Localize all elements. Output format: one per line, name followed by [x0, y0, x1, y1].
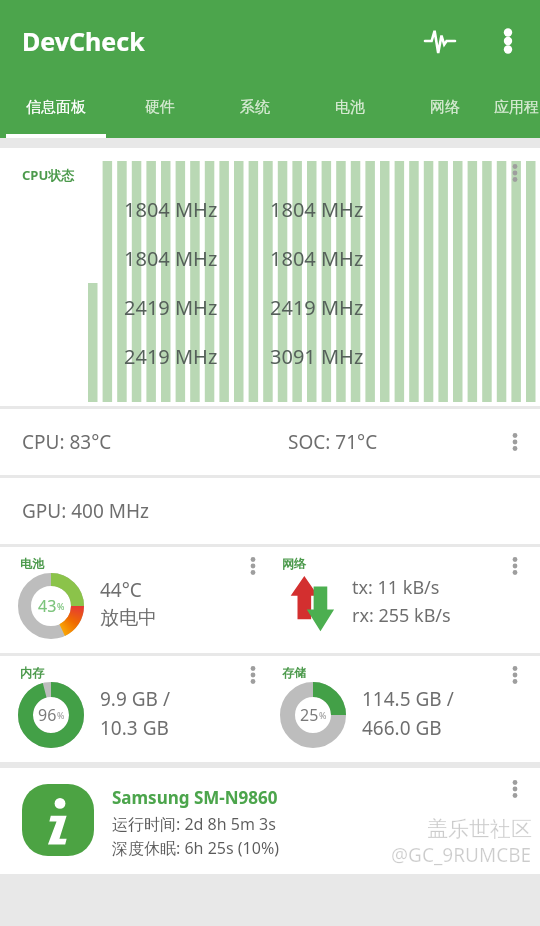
- staticText: 深度休眠: 6h 25s (10%): [112, 837, 279, 859]
- button[interactable]: Monitor: [418, 19, 462, 63]
- button[interactable]: More options: [498, 425, 532, 459]
- staticText: 系统: [240, 98, 270, 117]
- button[interactable]: More options: [498, 658, 532, 692]
- button[interactable]: 网络: [397, 82, 492, 132]
- staticText: DevCheck: [22, 24, 145, 58]
- staticText: rx: 255 kB/s: [352, 603, 451, 628]
- staticText: tx: 11 kB/s: [352, 575, 440, 600]
- button[interactable]: More options: [236, 549, 270, 583]
- staticText: 1804 MHz: [124, 196, 218, 223]
- staticText: SOC: 71°C: [288, 429, 378, 455]
- staticText: 2419 MHz: [124, 294, 218, 321]
- staticText: %: [57, 709, 65, 721]
- staticText: 硬件: [145, 98, 175, 117]
- staticText: 盖乐世社区: [427, 816, 532, 842]
- button[interactable]: More options: [498, 156, 532, 190]
- staticText: 放电中: [100, 606, 157, 630]
- staticText: 信息面板: [26, 98, 86, 117]
- staticText: 2419 MHz: [124, 343, 218, 370]
- staticText: GPU: 400 MHz: [22, 498, 150, 524]
- staticText: 网络: [282, 556, 306, 571]
- staticText: %: [319, 709, 327, 721]
- button[interactable]: More options: [236, 658, 270, 692]
- staticText: 2419 MHz: [270, 294, 364, 321]
- button[interactable]: 网络: [270, 547, 540, 653]
- button[interactable]: More options: [498, 549, 532, 583]
- staticText: CPU: 83°C: [22, 429, 112, 455]
- staticText: 10.3 GB: [100, 715, 169, 741]
- staticText: 3091 MHz: [270, 343, 364, 370]
- staticText: 电池: [335, 98, 365, 117]
- staticText: 应用程: [494, 98, 539, 117]
- button[interactable]: 内存: [0, 656, 270, 762]
- staticText: 114.5 GB /: [362, 686, 454, 712]
- staticText: 1804 MHz: [270, 245, 364, 272]
- staticText: 网络: [430, 98, 460, 117]
- staticText: @GC_9RUMCBE: [391, 842, 532, 868]
- staticText: 1804 MHz: [270, 196, 364, 223]
- button[interactable]: 信息面板: [0, 82, 112, 132]
- button[interactable]: 电池: [302, 82, 397, 132]
- button[interactable]: Samsung SM-N9860: [0, 768, 540, 874]
- staticText: 466.0 GB: [362, 715, 442, 741]
- staticText: 96: [38, 704, 57, 726]
- button[interactable]: CPU状态: [0, 148, 540, 406]
- button[interactable]: 应用程: [492, 82, 540, 132]
- staticText: 运行时间: 2d 8h 5m 3s: [112, 813, 276, 835]
- staticText: 9.9 GB /: [100, 686, 170, 712]
- staticText: 存储: [282, 665, 306, 680]
- staticText: %: [57, 600, 65, 612]
- staticText: 电池: [20, 556, 44, 571]
- staticText: CPU状态: [22, 166, 75, 184]
- button[interactable]: More options: [498, 772, 532, 806]
- staticText: 内存: [20, 665, 44, 680]
- staticText: Samsung SM-N9860: [112, 786, 278, 809]
- button[interactable]: 电池: [0, 547, 270, 653]
- button[interactable]: 系统: [207, 82, 302, 132]
- staticText: 1804 MHz: [124, 245, 218, 272]
- staticText: 25: [300, 704, 319, 726]
- staticText: 44°C: [100, 577, 142, 603]
- button[interactable]: GPU: 400 MHz: [0, 478, 540, 544]
- button[interactable]: 存储: [270, 656, 540, 762]
- button[interactable]: CPU: 83°C: [0, 409, 540, 475]
- staticText: 43: [38, 595, 57, 617]
- button[interactable]: More options: [486, 19, 530, 63]
- button[interactable]: 硬件: [112, 82, 207, 132]
